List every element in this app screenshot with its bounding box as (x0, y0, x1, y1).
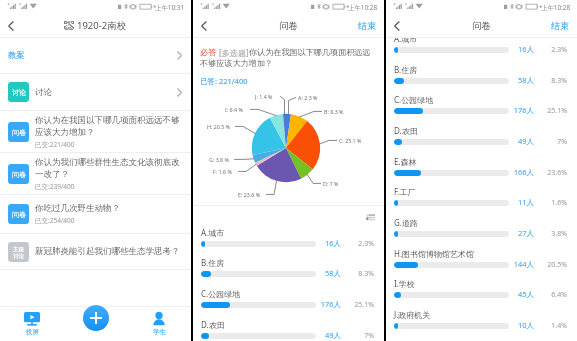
staticText: 已交:254/400 (35, 216, 75, 225)
button[interactable]: 主题 讨论 (0, 234, 191, 269)
staticText: 你认为我们哪些群性生态文化该彻底改一改了？ (35, 157, 182, 180)
staticText: 176人 (303, 299, 341, 309)
staticText: 25.1% (343, 300, 374, 310)
staticText: 已答: 221/400 (200, 76, 248, 86)
button[interactable]: C.公园绿地 (193, 288, 384, 318)
staticText: 上午10:28 (348, 3, 378, 12)
button[interactable]: 结束 (551, 14, 569, 37)
staticText: 8.3% (536, 76, 567, 86)
staticText: G: 3.8 % (209, 156, 229, 163)
button[interactable]: 学生 (127, 306, 191, 341)
staticText: 166人 (496, 167, 534, 177)
staticText: 45人 (496, 289, 534, 299)
staticText: 49人 (303, 330, 341, 340)
button[interactable]: 问卷 (0, 153, 191, 194)
button[interactable]: F.工厂 (386, 186, 577, 216)
button[interactable]: Sort (365, 213, 375, 221)
button[interactable]: J.政府机关 (386, 309, 577, 339)
staticText: 问卷 (12, 170, 26, 179)
staticText: H: 20.5 % (207, 123, 231, 130)
staticText: 1920-2南校 (77, 19, 127, 32)
staticText: 新冠肺炎能引起我们哪些生态学思考？ (35, 246, 180, 257)
button[interactable]: D.农田 (386, 125, 577, 155)
staticText: 你认为在我国以下哪几项面积远远不够应该大力增加？ (35, 115, 182, 138)
staticText: 学生 (153, 328, 166, 336)
staticText: F: 1.6 % (213, 168, 232, 175)
staticText: 58人 (303, 268, 341, 278)
staticText: 问卷 (12, 210, 26, 219)
staticText: C.公园绿地 (394, 94, 434, 105)
staticText: 8.3% (343, 269, 374, 279)
staticText: 上午10:28 (541, 3, 571, 12)
staticText: 1.4% (536, 321, 567, 331)
button[interactable]: B.住房 (193, 257, 384, 287)
staticText: 问卷 (12, 128, 26, 137)
staticText: 已交:221/400 (35, 140, 75, 149)
staticText: 7% (536, 137, 567, 147)
staticText: 2.3% (343, 239, 374, 249)
button[interactable]: 问卷 (0, 111, 191, 152)
staticText: D.农田 (394, 125, 418, 136)
button[interactable]: Back (386, 14, 407, 37)
staticText: C: 25.1 % (339, 137, 362, 144)
staticText: 结束 (551, 20, 569, 31)
staticText: 1.6% (536, 198, 567, 208)
staticText: I.学校 (394, 278, 415, 289)
staticText: 必答 (200, 47, 217, 57)
staticText: J.政府机关 (394, 309, 431, 320)
button[interactable]: D.农田 (193, 319, 384, 341)
staticText: 25.1% (536, 106, 567, 116)
button[interactable]: 问卷 (0, 195, 191, 233)
button[interactable]: 讨论 (0, 74, 191, 110)
staticText: H.图书馆博物馆艺术馆 (394, 248, 475, 259)
button[interactable]: Back (193, 14, 214, 37)
staticText: 上午10:31 (155, 3, 185, 12)
button[interactable]: E.森林 (386, 156, 577, 186)
button[interactable]: C.公园绿地 (386, 94, 577, 124)
staticText: 10人 (496, 320, 534, 330)
staticText: A.城市 (394, 38, 418, 44)
staticText: 投屏 (26, 328, 39, 336)
button[interactable]: 投屏 (0, 306, 64, 341)
button[interactable]: B.住房 (386, 64, 577, 94)
button[interactable]: A.城市 (193, 227, 384, 257)
button[interactable]: Back (0, 14, 21, 37)
staticText: 11人 (496, 197, 534, 207)
staticText: 49人 (496, 136, 534, 146)
staticText: D: 7 % (323, 180, 339, 187)
staticText: [多选题] (217, 47, 249, 58)
staticText: 问卷 (279, 20, 298, 32)
staticText: 16人 (303, 238, 341, 248)
staticText: 6.4% (536, 290, 567, 300)
button[interactable]: I.学校 (386, 278, 577, 308)
staticText: I: 6.4 % (225, 106, 243, 113)
staticText: 你认为在我国以下哪几项面积远远 (249, 47, 371, 57)
staticText: 27人 (496, 228, 534, 238)
staticText: 16人 (496, 44, 534, 54)
staticText: 主题 讨论 (13, 246, 24, 259)
staticText: B.住房 (201, 257, 225, 268)
staticText: F.工厂 (394, 186, 416, 197)
staticText: B: 8.3 % (324, 108, 344, 115)
staticText: 已交:239/400 (35, 182, 75, 191)
button[interactable]: G.道路 (386, 217, 577, 247)
staticText: 2.3% (536, 45, 567, 55)
staticText: G.道路 (394, 217, 418, 228)
staticText: 3.8% (536, 229, 567, 239)
staticText: 结束 (358, 20, 376, 31)
staticText: B.住房 (394, 64, 418, 75)
staticText: 7% (343, 331, 374, 341)
staticText: 你吃过几次野生动物？ (35, 203, 120, 214)
button[interactable]: Add (83, 305, 109, 331)
staticText: 问卷 (472, 20, 491, 32)
staticText: 不够应该大力增加？ (200, 58, 273, 68)
staticText: 23.6% (536, 168, 567, 178)
button[interactable]: H.图书馆博物馆艺术馆 (386, 248, 577, 278)
staticText: J: 1.4 % (255, 93, 273, 100)
staticText: 教案 (8, 50, 25, 61)
staticText: 讨论 (12, 88, 26, 97)
button[interactable]: 结束 (358, 14, 376, 37)
staticText: D.农田 (201, 319, 225, 330)
button[interactable]: 教案 (0, 38, 191, 73)
button[interactable]: A.城市 (386, 38, 577, 63)
